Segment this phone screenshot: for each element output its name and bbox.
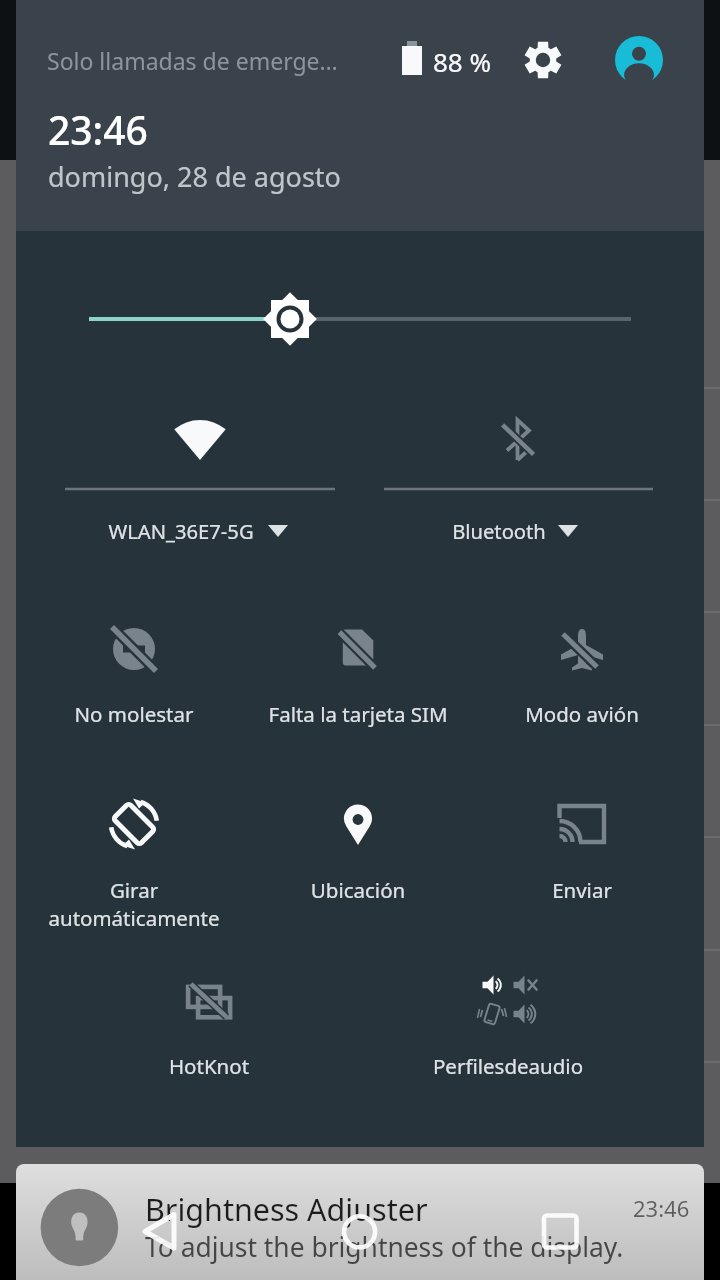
staticText: Perfilesdeaudio	[358, 1052, 658, 1080]
button[interactable]: WLAN_36E7-5G	[36, 392, 354, 552]
button[interactable]: Ubicación	[256, 776, 468, 928]
staticText: HotKnot	[59, 1052, 359, 1080]
button[interactable]: Home	[338, 1208, 382, 1252]
button[interactable]: Girar automáticamente	[36, 776, 248, 928]
button[interactable]: Enviar	[476, 776, 682, 928]
button[interactable]: Status and clock	[16, 0, 704, 231]
staticText: 23:46	[48, 103, 148, 156]
button[interactable]: No molestar	[36, 600, 248, 732]
staticText: Girar automáticamente	[0, 876, 284, 932]
staticText: 88 %	[433, 44, 492, 79]
button[interactable]: Brightness Adjuster	[16, 1164, 704, 1280]
staticText: Bluetooth	[349, 517, 649, 545]
button[interactable]: Bluetooth	[364, 392, 682, 552]
staticText: Modo avión	[432, 700, 720, 728]
button[interactable]: HotKnot	[118, 956, 300, 1088]
staticText: No molestar	[0, 700, 284, 728]
staticText: domingo, 28 de agosto	[48, 158, 341, 195]
button[interactable]: Modo avión	[476, 600, 682, 732]
staticText: To adjust the brightness of the display.	[145, 1229, 624, 1265]
staticText: Enviar	[432, 876, 720, 904]
staticText: Falta la tarjeta SIM	[208, 700, 508, 728]
staticText: Brightness Adjuster	[145, 1188, 428, 1230]
staticText: Ubicación	[208, 876, 508, 904]
button[interactable]: Falta la tarjeta SIM	[256, 600, 468, 732]
button[interactable]: Brightness slider	[60, 272, 660, 368]
button[interactable]: Back	[138, 1205, 182, 1257]
staticText: 23:46	[633, 1193, 690, 1223]
button[interactable]: Recents	[538, 1207, 582, 1251]
staticText: WLAN_36E7-5G	[31, 517, 331, 545]
button[interactable]: Perfiles de audio	[412, 956, 608, 1088]
staticText: Solo llamadas de emerge…	[47, 45, 338, 76]
